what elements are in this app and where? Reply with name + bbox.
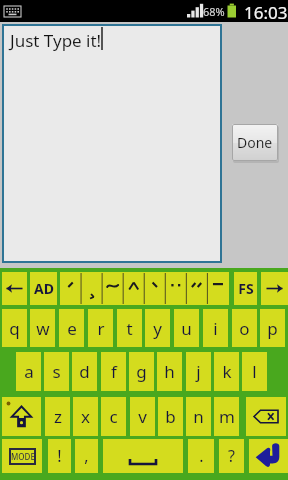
staticText: g <box>136 360 147 383</box>
button[interactable]: t <box>117 309 142 347</box>
button[interactable]: Backspace <box>246 397 286 436</box>
button[interactable]: Done <box>232 124 278 161</box>
button[interactable]: m <box>214 397 239 436</box>
staticText: AD <box>34 279 54 298</box>
button[interactable]: p <box>260 309 285 347</box>
staticText: t <box>126 317 133 340</box>
button[interactable]: Diacritic 2 <box>81 272 102 305</box>
staticText: j <box>196 360 201 383</box>
staticText: b <box>165 405 176 428</box>
staticText: a <box>24 360 34 383</box>
button[interactable]: n <box>186 397 211 436</box>
staticText: 68% <box>203 4 225 19</box>
staticText: w <box>36 317 50 340</box>
button[interactable]: w <box>30 309 55 347</box>
button[interactable]: l <box>242 352 267 391</box>
staticText: FS <box>238 279 254 298</box>
staticText: m <box>219 405 235 428</box>
button[interactable]: Diacritic 6 <box>165 272 186 305</box>
button[interactable]: v <box>130 397 155 436</box>
button[interactable]: AD <box>30 272 57 305</box>
button[interactable]: e <box>59 309 84 347</box>
button[interactable]: ? <box>219 439 244 473</box>
staticText: s <box>52 360 61 383</box>
button[interactable]: Diacritic 5 <box>144 272 165 305</box>
staticText: d <box>79 360 90 383</box>
button[interactable]: d <box>72 352 97 391</box>
staticText: . <box>199 445 204 467</box>
staticText: z <box>54 405 62 428</box>
button[interactable]: Diacritic 1 <box>60 272 81 305</box>
staticText: y <box>153 317 162 340</box>
button[interactable]: FS <box>234 272 257 305</box>
button[interactable]: u <box>174 309 199 347</box>
button[interactable]: x <box>73 397 98 436</box>
button[interactable]: k <box>214 352 239 391</box>
staticText: q <box>9 317 20 340</box>
staticText: v <box>138 405 147 428</box>
button[interactable]: Space <box>103 439 183 473</box>
staticText: o <box>239 317 250 340</box>
button[interactable]: s <box>44 352 69 391</box>
staticText: x <box>81 405 90 428</box>
staticText: c <box>109 405 118 428</box>
button[interactable]: Diacritic 4 <box>123 272 144 305</box>
staticText: i <box>213 317 218 340</box>
staticText: l <box>252 360 257 383</box>
button[interactable]: Enter <box>249 439 288 473</box>
staticText: n <box>193 405 204 428</box>
staticText: ? <box>228 445 235 467</box>
staticText: Just Type it! <box>10 29 102 52</box>
staticText: MODE <box>11 451 35 462</box>
button[interactable]: i <box>203 309 228 347</box>
staticText: p <box>267 317 278 340</box>
button[interactable]: r <box>88 309 113 347</box>
button[interactable]: g <box>129 352 154 391</box>
staticText: r <box>97 317 105 340</box>
button[interactable]: c <box>101 397 126 436</box>
button[interactable]: y <box>145 309 170 347</box>
button[interactable]: . <box>188 439 214 473</box>
button[interactable]: q <box>2 309 27 347</box>
button[interactable]: b <box>158 397 183 436</box>
button[interactable]: Previous <box>2 272 27 305</box>
staticText: u <box>181 317 192 340</box>
button[interactable]: Diacritic 7 <box>186 272 207 305</box>
staticText: f <box>111 360 117 383</box>
button[interactable]: Shift <box>2 397 41 436</box>
button[interactable]: Diacritic 3 <box>102 272 123 305</box>
button[interactable]: o <box>232 309 257 347</box>
button[interactable]: , <box>75 439 98 473</box>
button[interactable]: f <box>101 352 126 391</box>
button[interactable]: z <box>45 397 70 436</box>
staticText: 16:03 <box>244 1 288 23</box>
button[interactable]: h <box>157 352 182 391</box>
staticText: , <box>84 445 89 467</box>
button[interactable]: a <box>16 352 41 391</box>
staticText: e <box>67 317 77 340</box>
button[interactable]: MODE <box>2 439 42 473</box>
staticText: k <box>222 360 232 383</box>
button[interactable]: ! <box>48 439 71 473</box>
staticText: h <box>164 360 175 383</box>
button[interactable]: Diacritic 8 <box>207 272 228 305</box>
staticText: Done <box>237 133 273 152</box>
staticText: ! <box>57 445 62 467</box>
button[interactable]: Just Type it! <box>2 24 222 263</box>
button[interactable]: j <box>186 352 211 391</box>
button[interactable]: Next <box>261 272 288 305</box>
